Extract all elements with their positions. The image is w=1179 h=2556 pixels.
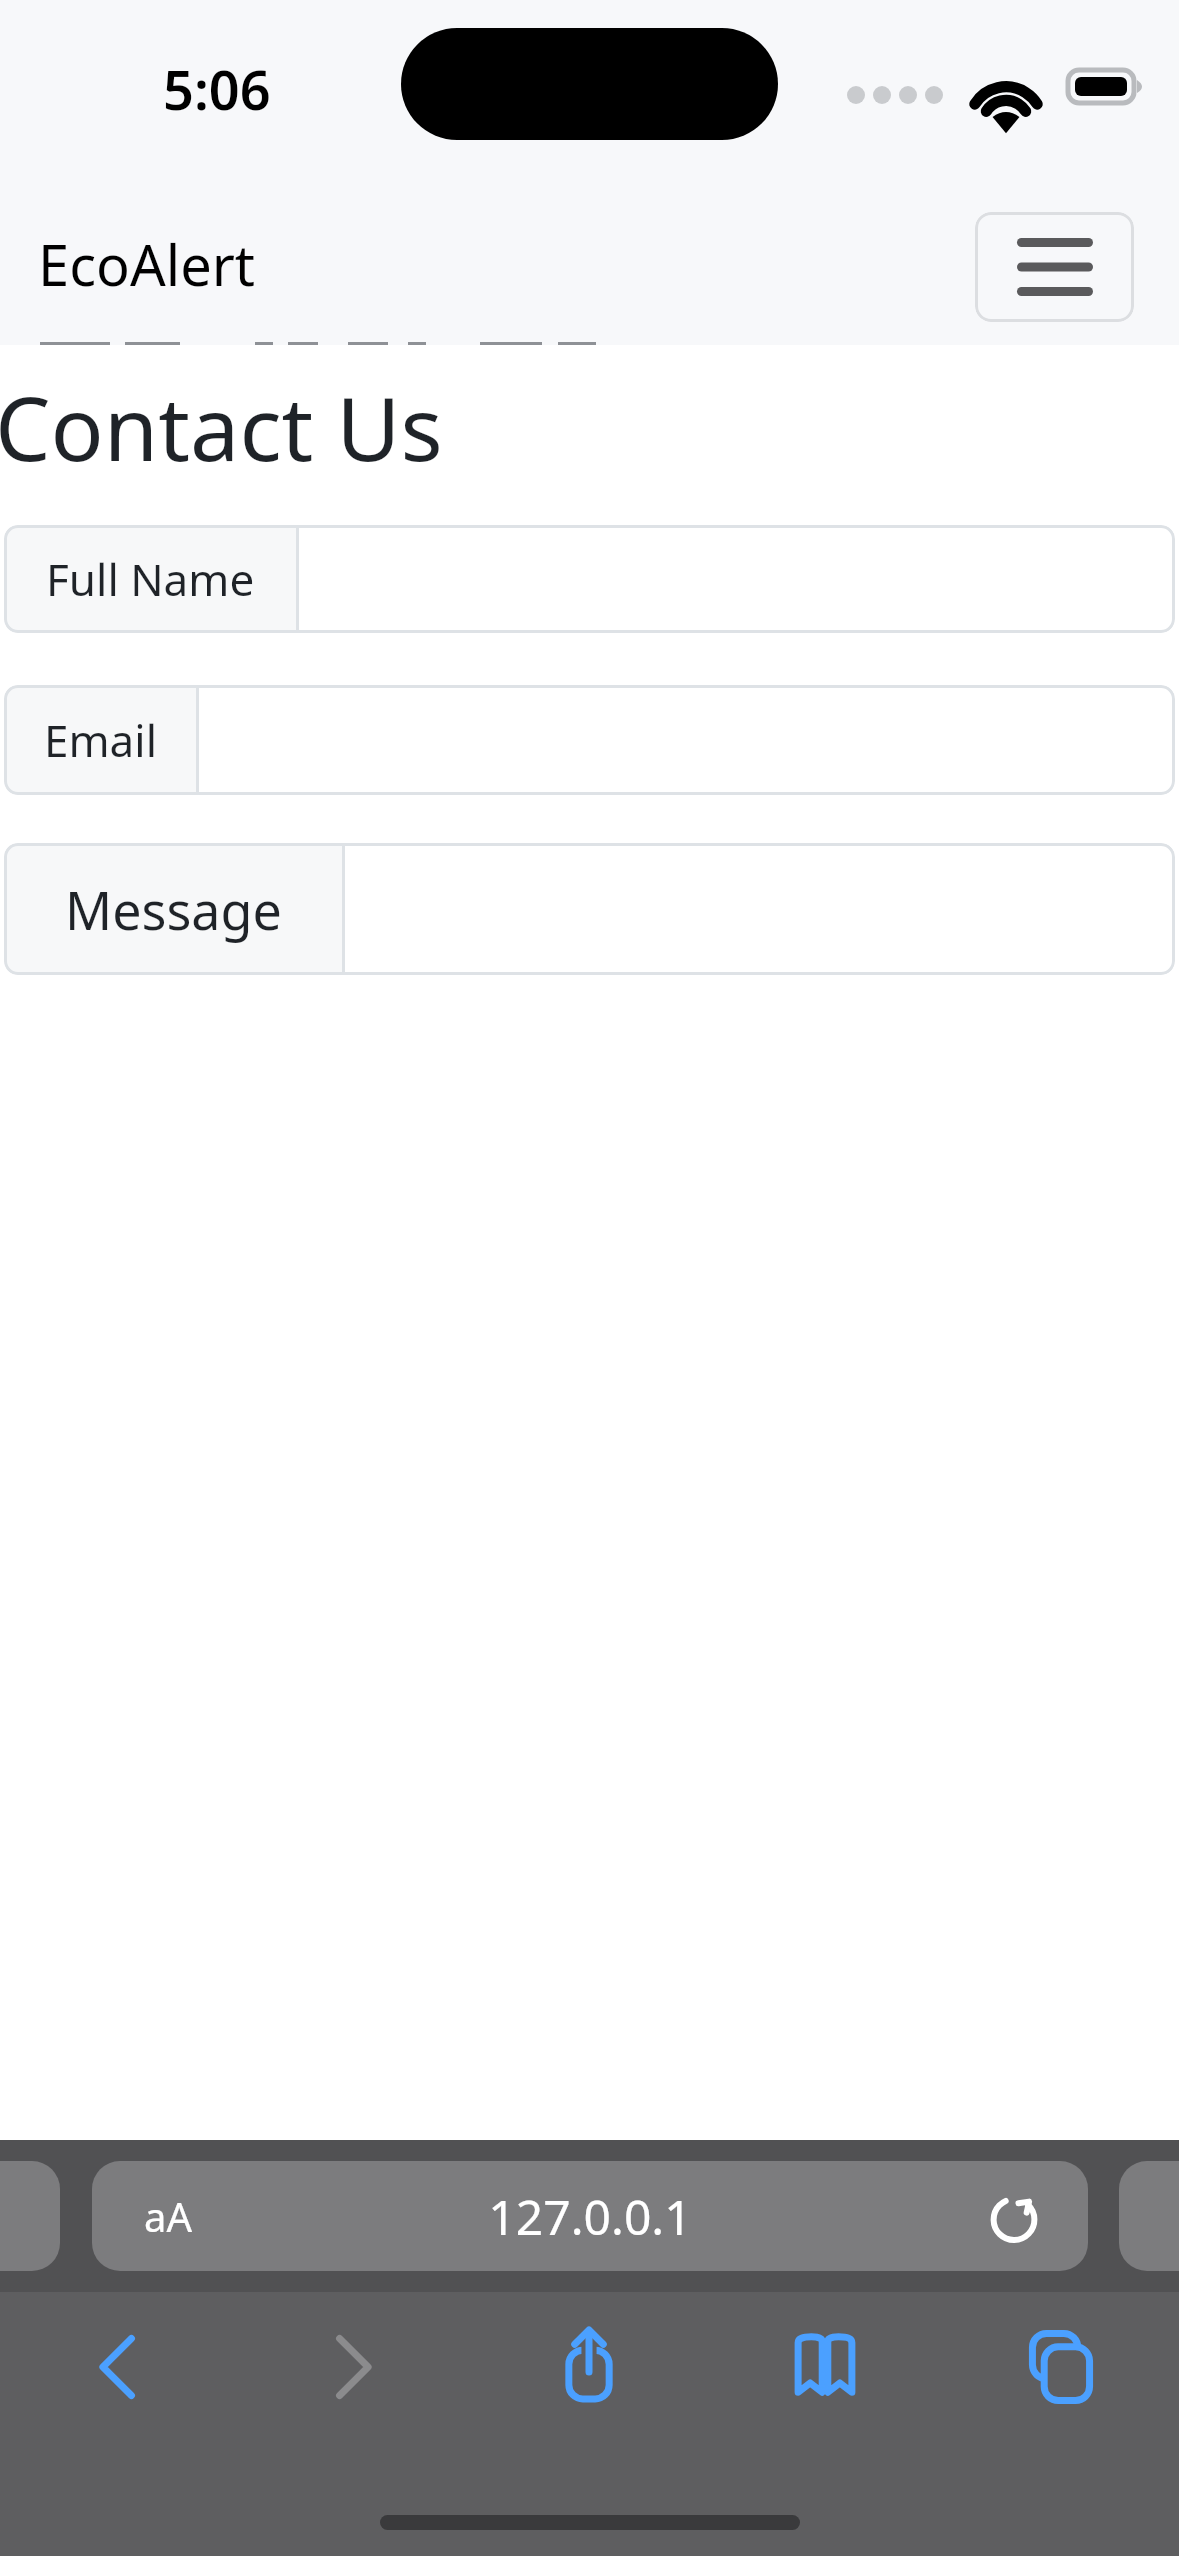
staticText: EcoAlert	[38, 226, 256, 302]
staticText: Message	[65, 874, 282, 945]
button[interactable]: Full Name	[4, 525, 1175, 633]
button[interactable]: Forward	[235, 2292, 471, 2442]
button[interactable]: Back	[0, 2292, 235, 2442]
button[interactable]: Tabs	[943, 2292, 1179, 2442]
button[interactable]: Page settings	[92, 2161, 1088, 2271]
button[interactable]: Bookmarks	[707, 2292, 943, 2442]
staticText: Full Name	[46, 549, 255, 609]
button[interactable]: Message	[4, 843, 1175, 975]
staticText: Email	[44, 710, 157, 770]
button[interactable]: Reload page	[984, 2186, 1044, 2246]
button[interactable]: Open menu	[975, 212, 1134, 322]
staticText: 127.0.0.1	[488, 2184, 692, 2249]
staticText: 5:06	[163, 52, 271, 126]
button[interactable]: Share	[471, 2292, 707, 2442]
button[interactable]: aA	[144, 2189, 192, 2243]
button[interactable]: Email	[4, 685, 1175, 795]
staticText: Contact Us	[0, 367, 443, 487]
